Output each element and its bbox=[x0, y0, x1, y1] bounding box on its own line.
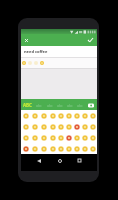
button[interactable]: abc bbox=[33, 99, 44, 110]
button[interactable]: Emoji bbox=[89, 110, 97, 121]
button[interactable]: Emoji bbox=[73, 143, 81, 154]
staticText: ABC bbox=[23, 102, 32, 108]
button[interactable]: Emoji bbox=[30, 121, 39, 132]
button[interactable]: Emoji bbox=[39, 132, 48, 143]
button[interactable]: Emoji bbox=[57, 143, 65, 154]
button[interactable]: Emoji bbox=[65, 121, 73, 132]
button[interactable]: Emoji bbox=[48, 110, 57, 121]
button[interactable]: abc bbox=[55, 99, 65, 110]
staticText: abc bbox=[77, 103, 83, 108]
button[interactable]: Emoji suggestion bbox=[33, 58, 39, 68]
staticText: need coffee bbox=[24, 49, 48, 54]
button[interactable]: Emoji suggestion bbox=[21, 58, 27, 68]
button[interactable]: Send bbox=[85, 34, 95, 46]
button[interactable]: Emoji bbox=[48, 121, 57, 132]
button[interactable]: Emoji bbox=[81, 110, 89, 121]
button[interactable]: Emoji bbox=[57, 110, 65, 121]
button[interactable]: Close bbox=[22, 34, 31, 46]
button[interactable]: Home bbox=[54, 155, 65, 166]
staticText: abc bbox=[67, 103, 73, 108]
button[interactable]: Emoji bbox=[39, 143, 48, 154]
button[interactable]: Emoji bbox=[21, 110, 30, 121]
button[interactable]: abc bbox=[75, 99, 85, 110]
staticText: abc bbox=[57, 103, 63, 108]
button[interactable]: Emoji bbox=[21, 121, 30, 132]
button[interactable]: Emoji bbox=[73, 121, 81, 132]
button[interactable]: Emoji bbox=[65, 132, 73, 143]
button[interactable]: Emoji bbox=[48, 143, 57, 154]
button[interactable]: Backspace bbox=[85, 99, 97, 110]
button[interactable]: Emoji bbox=[39, 110, 48, 121]
staticText: abc bbox=[36, 103, 42, 108]
button[interactable]: Emoji bbox=[81, 121, 89, 132]
button[interactable]: Emoji suggestion bbox=[39, 58, 45, 68]
button[interactable]: Emoji suggestion bbox=[27, 58, 33, 68]
button[interactable]: Back bbox=[33, 155, 44, 166]
button[interactable]: Emoji bbox=[21, 132, 30, 143]
button[interactable]: Emoji bbox=[30, 110, 39, 121]
button[interactable]: Emoji bbox=[57, 132, 65, 143]
button[interactable]: Emoji bbox=[81, 143, 89, 154]
button[interactable]: Emoji bbox=[21, 143, 30, 154]
button[interactable]: Emoji bbox=[65, 143, 73, 154]
button[interactable]: abc bbox=[65, 99, 75, 110]
button[interactable]: ABC bbox=[21, 99, 33, 110]
button[interactable]: Emoji bbox=[30, 143, 39, 154]
button[interactable]: Emoji bbox=[81, 132, 89, 143]
button[interactable]: Emoji bbox=[73, 110, 81, 121]
button[interactable]: Emoji bbox=[89, 121, 97, 132]
button[interactable]: Emoji bbox=[89, 143, 97, 154]
button[interactable]: Emoji bbox=[30, 132, 39, 143]
button[interactable]: Emoji bbox=[57, 121, 65, 132]
button[interactable]: abc bbox=[44, 99, 55, 110]
button[interactable]: Emoji bbox=[39, 121, 48, 132]
button[interactable]: Emoji bbox=[73, 132, 81, 143]
staticText: abc bbox=[47, 103, 53, 108]
button[interactable]: Recents bbox=[74, 155, 85, 166]
button[interactable]: Emoji bbox=[48, 132, 57, 143]
button[interactable]: Emoji bbox=[89, 132, 97, 143]
button[interactable]: Emoji bbox=[65, 110, 73, 121]
